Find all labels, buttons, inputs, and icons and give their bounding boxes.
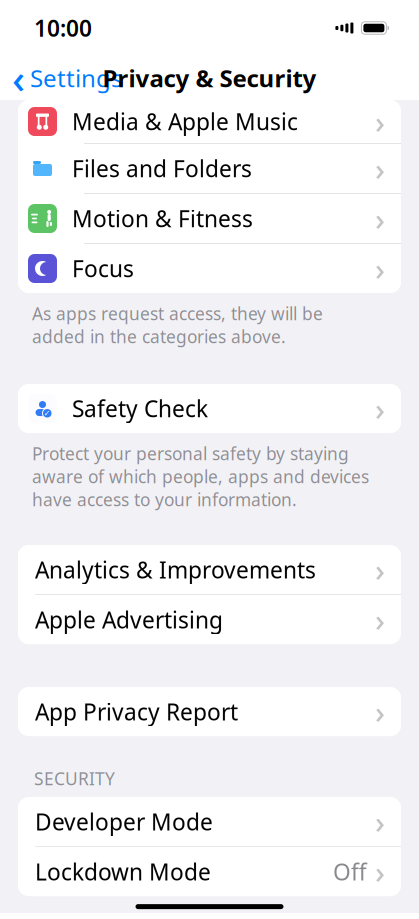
- staticText: Protect your personal safety by staying …: [32, 442, 369, 511]
- staticText: Developer Mode: [35, 807, 213, 837]
- button[interactable]: Lockdown Mode: [18, 847, 401, 896]
- staticText: Off: [333, 857, 367, 887]
- staticText: As apps request access, they will be add…: [32, 302, 323, 348]
- staticText: ›: [375, 599, 385, 640]
- button[interactable]: Apple Advertising: [18, 595, 401, 644]
- button[interactable]: Analytics & Improvements: [18, 545, 401, 595]
- button[interactable]: Developer Mode: [18, 797, 401, 847]
- staticText: SECURITY: [34, 767, 115, 790]
- button[interactable]: Focus: [18, 244, 401, 293]
- button[interactable]: ‹: [0, 56, 122, 100]
- button[interactable]: Motion & Fitness: [18, 194, 401, 244]
- staticText: ‹: [12, 51, 25, 104]
- staticText: Safety Check: [72, 393, 208, 424]
- staticText: ›: [375, 801, 385, 842]
- staticText: Media & Apple Music: [72, 106, 298, 136]
- staticText: ›: [375, 248, 385, 289]
- button[interactable]: App Privacy Report: [18, 687, 401, 736]
- button[interactable]: ✓: [18, 384, 401, 433]
- button[interactable]: Files and Folders: [18, 144, 401, 194]
- staticText: App Privacy Report: [35, 696, 238, 727]
- staticText: Files and Folders: [72, 153, 252, 183]
- staticText: ✓: [44, 409, 51, 418]
- staticText: Privacy & Security: [102, 62, 316, 94]
- staticText: ›: [375, 101, 385, 142]
- staticText: Apple Advertising: [35, 604, 223, 635]
- staticText: ›: [375, 148, 385, 189]
- staticText: Analytics & Improvements: [35, 554, 316, 585]
- staticText: Settings: [30, 62, 122, 94]
- staticText: Motion & Fitness: [72, 203, 253, 233]
- staticText: ›: [375, 549, 385, 590]
- staticText: 10:00: [34, 13, 92, 43]
- staticText: Lockdown Mode: [35, 857, 211, 887]
- staticText: ›: [375, 691, 385, 732]
- staticText: ›: [375, 198, 385, 239]
- staticText: ›: [375, 851, 385, 892]
- staticText: Focus: [72, 253, 134, 283]
- button[interactable]: Media & Apple Music: [18, 100, 401, 144]
- staticText: ›: [375, 388, 385, 429]
